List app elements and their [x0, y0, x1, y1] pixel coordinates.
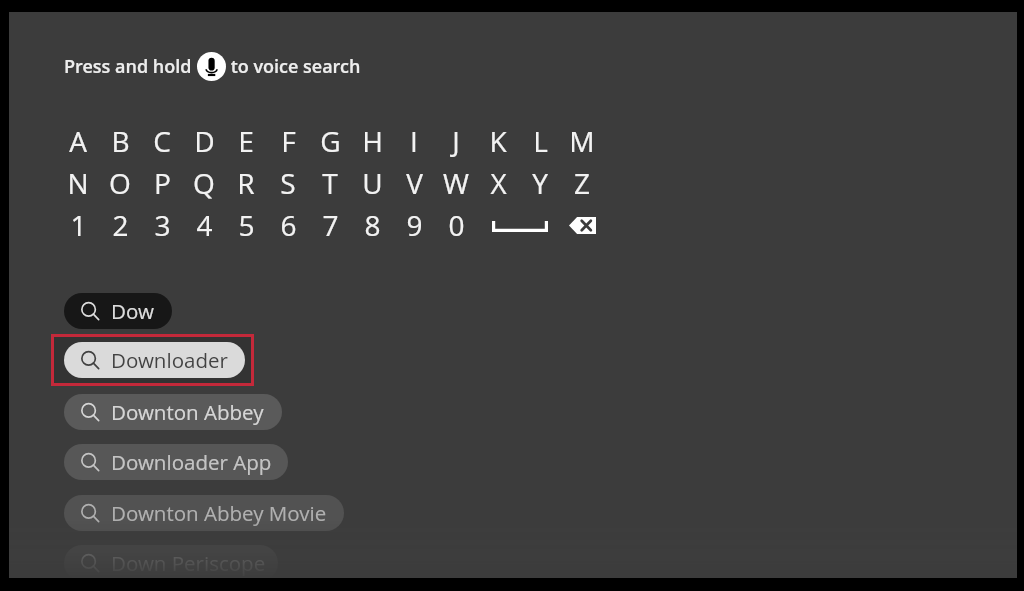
button[interactable]: Delete — [561, 204, 603, 246]
button[interactable]: 9 — [393, 204, 435, 246]
staticText: E — [238, 122, 254, 160]
button[interactable]: S — [267, 162, 309, 204]
button[interactable]: X — [477, 162, 519, 204]
button[interactable]: Dow — [64, 293, 172, 329]
staticText: Y — [532, 164, 548, 202]
staticText: Down Periscope — [111, 549, 266, 577]
staticText: U — [362, 164, 383, 202]
button[interactable]: R — [225, 162, 267, 204]
button[interactable]: I — [393, 120, 435, 162]
button[interactable]: Down Periscope — [64, 545, 278, 581]
button[interactable]: F — [267, 120, 309, 162]
staticText: V — [406, 164, 423, 202]
button[interactable]: J — [435, 120, 477, 162]
staticText: 5 — [238, 206, 255, 244]
button[interactable]: U — [351, 162, 393, 204]
staticText: 4 — [196, 206, 213, 244]
staticText: S — [280, 164, 296, 202]
staticText: 2 — [112, 206, 129, 244]
staticText: to voice search — [226, 54, 361, 79]
staticText: I — [410, 122, 418, 160]
button[interactable]: C — [141, 120, 183, 162]
button[interactable]: Voice search — [197, 52, 226, 81]
staticText: M — [569, 122, 595, 160]
button[interactable]: Y — [519, 162, 561, 204]
button[interactable]: Downton Abbey Movie — [64, 495, 344, 531]
staticText: X — [490, 164, 507, 202]
staticText: F — [281, 122, 296, 160]
button[interactable]: N — [57, 162, 99, 204]
button[interactable]: 0 — [435, 204, 477, 246]
button[interactable]: 6 — [267, 204, 309, 246]
staticText: B — [111, 122, 130, 160]
button[interactable]: M — [561, 120, 603, 162]
staticText: J — [452, 122, 460, 160]
staticText: Q — [193, 164, 215, 202]
staticText: R — [237, 164, 255, 202]
button[interactable]: Downton Abbey — [64, 394, 282, 430]
staticText: C — [153, 122, 171, 160]
button[interactable]: V — [393, 162, 435, 204]
staticText: 6 — [280, 206, 297, 244]
staticText: H — [362, 122, 383, 160]
button[interactable]: W — [435, 162, 477, 204]
button[interactable]: A — [57, 120, 99, 162]
button[interactable]: 7 — [309, 204, 351, 246]
staticText: Downloader App — [111, 448, 272, 476]
button[interactable]: Downloader App — [64, 444, 288, 480]
button[interactable]: 2 — [99, 204, 141, 246]
button[interactable]: D — [183, 120, 225, 162]
button[interactable]: 3 — [141, 204, 183, 246]
button[interactable]: H — [351, 120, 393, 162]
staticText: Downton Abbey — [111, 398, 264, 426]
staticText: 7 — [322, 206, 339, 244]
button[interactable]: T — [309, 162, 351, 204]
staticText: 0 — [448, 206, 465, 244]
button[interactable]: B — [99, 120, 141, 162]
staticText: Downloader — [111, 346, 228, 374]
button[interactable]: O — [99, 162, 141, 204]
button[interactable]: E — [225, 120, 267, 162]
button[interactable]: 5 — [225, 204, 267, 246]
button[interactable]: L — [519, 120, 561, 162]
button[interactable]: K — [477, 120, 519, 162]
staticText: 1 — [70, 206, 87, 244]
staticText: P — [154, 164, 171, 202]
button[interactable]: Q — [183, 162, 225, 204]
staticText: Dow — [111, 297, 154, 325]
button[interactable]: Space — [477, 204, 561, 246]
button[interactable]: G — [309, 120, 351, 162]
staticText: L — [533, 122, 548, 160]
staticText: N — [67, 164, 89, 202]
staticText: 9 — [406, 206, 423, 244]
staticText: 8 — [364, 206, 381, 244]
staticText: Press and hold — [64, 54, 197, 79]
button[interactable]: Z — [561, 162, 603, 204]
button[interactable]: Downloader — [64, 342, 245, 378]
button[interactable]: 1 — [57, 204, 99, 246]
staticText: D — [194, 122, 215, 160]
staticText: A — [69, 122, 87, 160]
staticText: K — [489, 122, 507, 160]
staticText: 3 — [154, 206, 171, 244]
staticText: G — [320, 122, 341, 160]
staticText: Downton Abbey Movie — [111, 499, 327, 527]
staticText: Z — [574, 164, 590, 202]
button[interactable]: 4 — [183, 204, 225, 246]
button[interactable]: 8 — [351, 204, 393, 246]
staticText: O — [109, 164, 131, 202]
staticText: T — [322, 164, 338, 202]
button[interactable]: P — [141, 162, 183, 204]
staticText: W — [443, 164, 469, 202]
